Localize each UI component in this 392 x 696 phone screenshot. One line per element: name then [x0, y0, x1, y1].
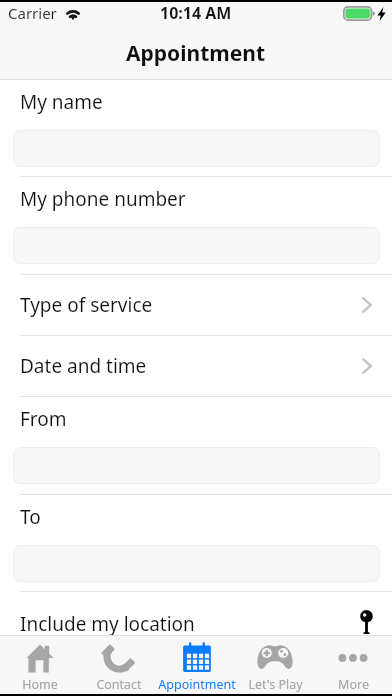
button[interactable]: Let's Play — [236, 635, 314, 694]
button[interactable]: Contact — [79, 635, 158, 694]
staticText: Appointment — [126, 39, 266, 68]
staticText: From — [20, 406, 67, 432]
button[interactable]: Include my location — [0, 592, 392, 635]
button[interactable]: More — [314, 635, 392, 694]
staticText: Type of service — [20, 292, 153, 318]
staticText: Contact — [96, 676, 142, 693]
staticText: Let's Play — [248, 676, 303, 693]
staticText: Appointment — [158, 676, 236, 693]
staticText: My name — [20, 89, 103, 115]
staticText: Home — [22, 676, 58, 693]
staticText: Carrier — [8, 3, 57, 23]
button[interactable]: Date and time — [0, 336, 392, 396]
staticText: To — [20, 504, 41, 530]
staticText: Include my location — [20, 611, 195, 637]
staticText: 10:14 AM — [160, 2, 232, 24]
staticText: My phone number — [20, 186, 186, 212]
button[interactable]: Home — [0, 635, 79, 694]
staticText: Date and time — [20, 353, 147, 379]
staticText: More — [338, 676, 369, 693]
other: Location — [360, 610, 373, 634]
button[interactable]: Type of service — [0, 275, 392, 335]
button[interactable]: Appointment — [158, 635, 236, 694]
